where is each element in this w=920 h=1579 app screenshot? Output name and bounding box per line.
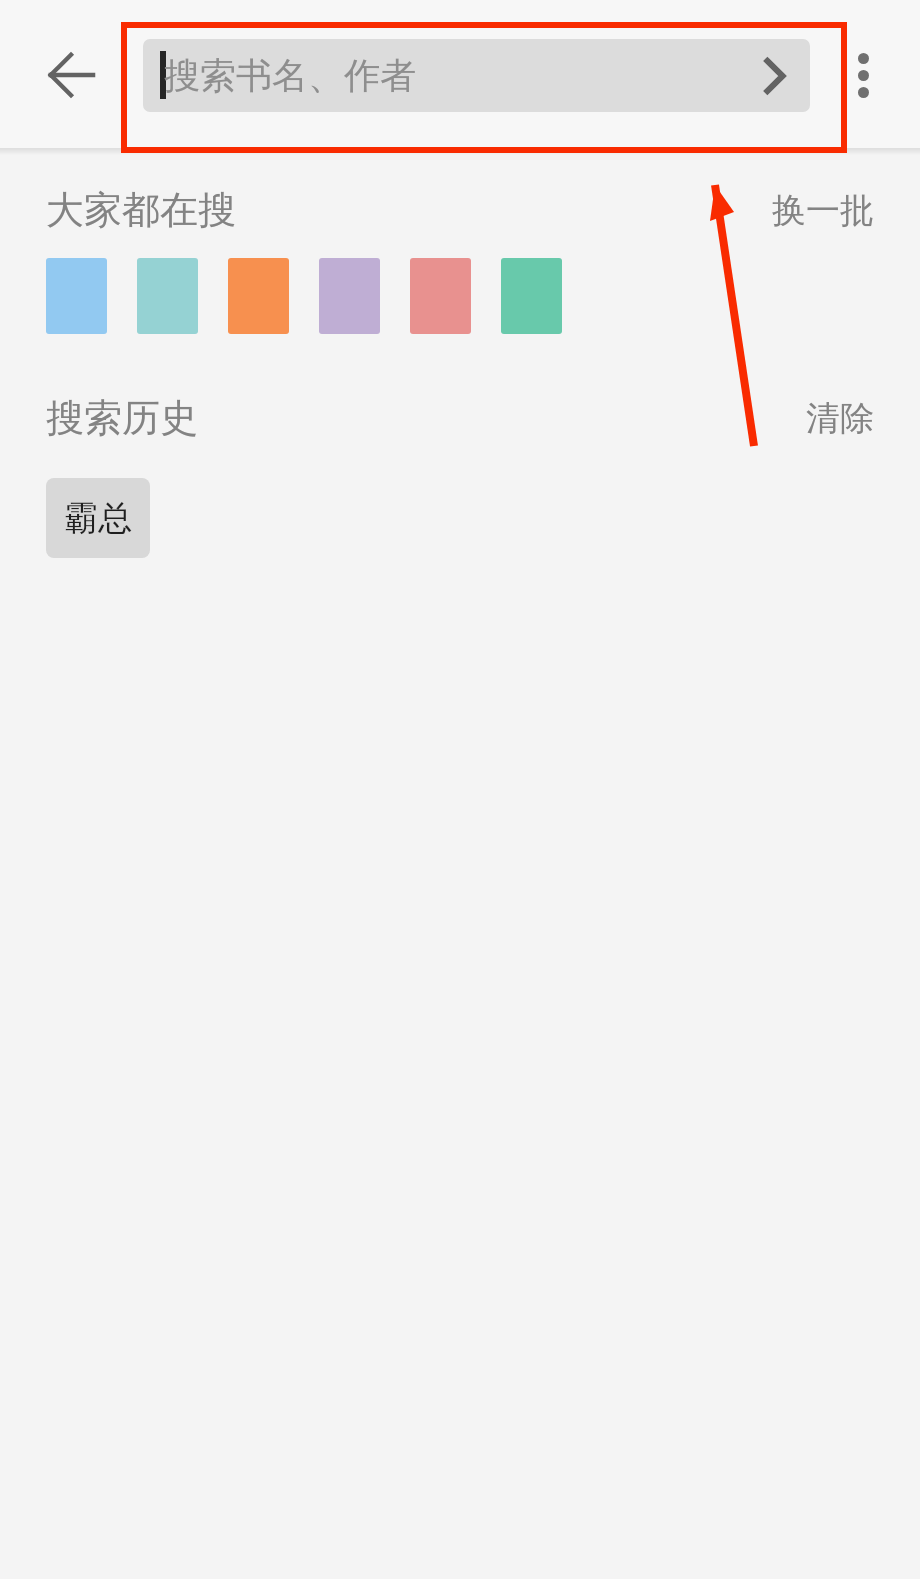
button[interactable]: Hot search 2 <box>228 258 289 334</box>
button[interactable]: 搜索书名、作者 <box>143 39 810 112</box>
button[interactable]: Hot search 5 <box>501 258 562 334</box>
button[interactable]: 清除 <box>806 397 874 440</box>
button[interactable]: 大家都在搜 <box>46 186 236 234</box>
button[interactable]: More options <box>828 40 898 110</box>
button[interactable]: 换一批 <box>772 189 874 232</box>
button[interactable]: Back <box>28 32 114 118</box>
button[interactable]: Search <box>740 41 810 111</box>
button[interactable]: 霸总 <box>46 478 150 558</box>
button[interactable]: 搜索历史 <box>46 394 198 442</box>
staticText: 搜索书名、作者 <box>164 53 416 98</box>
staticText: 霸总 <box>64 497 132 540</box>
button[interactable]: Hot search 4 <box>410 258 471 334</box>
